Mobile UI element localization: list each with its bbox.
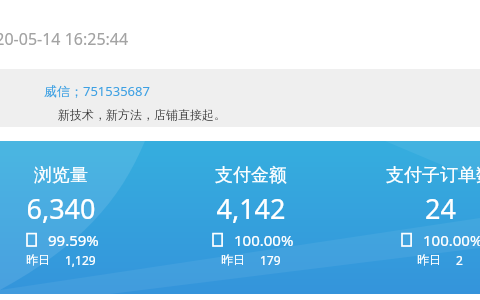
staticText: 新技术，新方法，店铺直接起。 <box>58 107 226 122</box>
staticText: 昨日 <box>417 252 441 267</box>
staticText: 威信；751535687 <box>44 82 150 100</box>
staticText: 179 <box>260 252 281 268</box>
button[interactable]: 浏览量 <box>0 153 156 283</box>
staticText: 1,129 <box>65 252 96 268</box>
button[interactable]: 威信；751535687 <box>44 80 150 102</box>
staticText: 昨日 <box>221 252 245 267</box>
staticText: 100.00% <box>423 230 480 250</box>
button[interactable]: 支付金额 <box>156 153 346 283</box>
staticText: 2 <box>456 252 463 268</box>
staticText: 99.59% <box>48 230 99 250</box>
staticText: 2020-05-14 16:25:44 <box>0 28 129 50</box>
staticText: 昨日 <box>26 252 50 267</box>
staticText: 6,340 <box>26 190 96 227</box>
button[interactable]: 支付子订单数 <box>345 153 480 283</box>
staticText: 支付子订单数 <box>386 164 480 187</box>
staticText: 100.00% <box>234 230 294 250</box>
staticText: 浏览量 <box>34 164 88 187</box>
staticText: 4,142 <box>216 190 286 227</box>
staticText: 支付金额 <box>215 164 287 187</box>
staticText: 24 <box>425 190 456 227</box>
